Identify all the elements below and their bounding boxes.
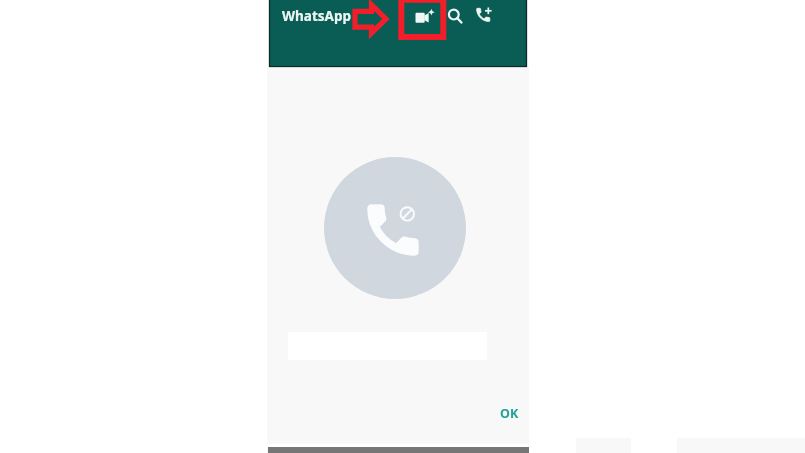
- staticText: OK: [500, 405, 519, 422]
- button[interactable]: New video call: [408, 3, 436, 31]
- button[interactable]: New call: [468, 3, 496, 31]
- button[interactable]: Search: [441, 3, 469, 31]
- staticText: WhatsApp: [282, 7, 351, 25]
- button[interactable]: OK: [492, 400, 526, 427]
